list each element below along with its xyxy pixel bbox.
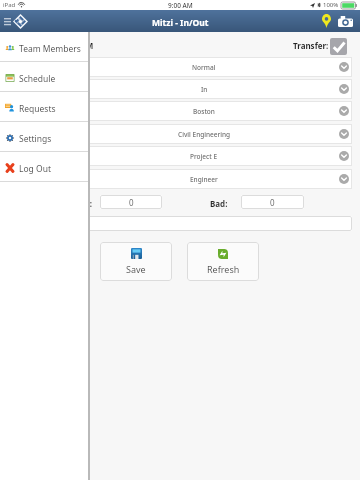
staticText: Bad: (210, 198, 228, 209)
staticText: Team Members (19, 43, 81, 55)
button[interactable]: Save (100, 242, 172, 281)
staticText: In (201, 85, 208, 94)
staticText: 0 (270, 197, 275, 208)
staticText: Project E (190, 152, 218, 161)
staticText: Normal (192, 63, 216, 72)
staticText: Refresh (207, 263, 240, 275)
button[interactable]: Normal (56, 57, 352, 77)
button[interactable]: Notes field (60, 216, 352, 231)
button[interactable]: Engineer (56, 169, 352, 189)
button[interactable]: Open navigation menu (1, 15, 13, 27)
button[interactable]: Transfer (330, 38, 347, 55)
button[interactable]: 0 (241, 195, 304, 209)
staticText: Boston (193, 107, 215, 116)
staticText: 0 (129, 197, 134, 208)
staticText: Civil Engineering (178, 130, 231, 139)
staticText: Mitzi M (64, 40, 94, 51)
staticText: Save (126, 263, 146, 275)
button[interactable]: Camera (336, 12, 354, 30)
staticText: Settings (19, 133, 52, 145)
button[interactable]: In (56, 79, 352, 99)
button[interactable]: Refresh (187, 242, 259, 281)
button[interactable]: Team Members (0, 32, 88, 61)
staticText: Mitzi - In/Out (152, 17, 209, 29)
staticText: Transfer: (293, 40, 329, 51)
staticText: Requests (19, 103, 56, 115)
staticText: Good: (69, 198, 93, 209)
staticText: Log Out (19, 163, 51, 175)
button[interactable]: Schedule (0, 62, 88, 91)
button[interactable]: 0 (100, 195, 162, 209)
button[interactable]: Requests (0, 92, 88, 121)
button[interactable]: Settings (0, 122, 88, 151)
button[interactable]: Boston (56, 101, 352, 121)
button[interactable]: Civil Engineering (56, 124, 352, 144)
button[interactable]: App logo (11, 12, 29, 30)
staticText: iPad (3, 1, 16, 9)
staticText: Engineer (190, 175, 218, 184)
button[interactable]: Location (317, 12, 335, 30)
staticText: 100% (323, 1, 339, 9)
button[interactable]: Log Out (0, 152, 88, 181)
staticText: Schedule (19, 73, 56, 85)
button[interactable]: Project E (56, 146, 352, 166)
staticText: 9:00 AM (168, 1, 193, 10)
